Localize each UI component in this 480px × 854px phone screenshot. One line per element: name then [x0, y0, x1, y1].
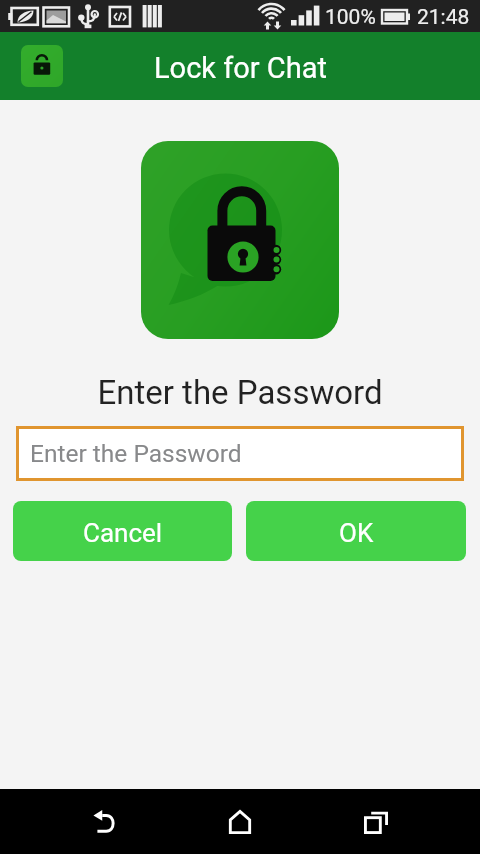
staticText: 21:48 — [417, 5, 470, 30]
staticText: Lock for Chat — [154, 51, 327, 85]
staticText: 100% — [325, 5, 376, 30]
button[interactable]: Cancel — [13, 501, 232, 561]
button[interactable]: OK — [246, 501, 466, 561]
button[interactable]: Enter the Password — [16, 426, 464, 481]
staticText: Enter the Password — [30, 439, 242, 468]
button[interactable]: Home — [208, 790, 272, 854]
staticText: OK — [339, 518, 374, 548]
button[interactable]: Back — [72, 790, 136, 854]
button[interactable]: Lock — [21, 45, 63, 87]
staticText: Cancel — [83, 518, 163, 548]
staticText: Enter the Password — [0, 373, 480, 412]
button[interactable]: Recent apps — [344, 790, 408, 854]
